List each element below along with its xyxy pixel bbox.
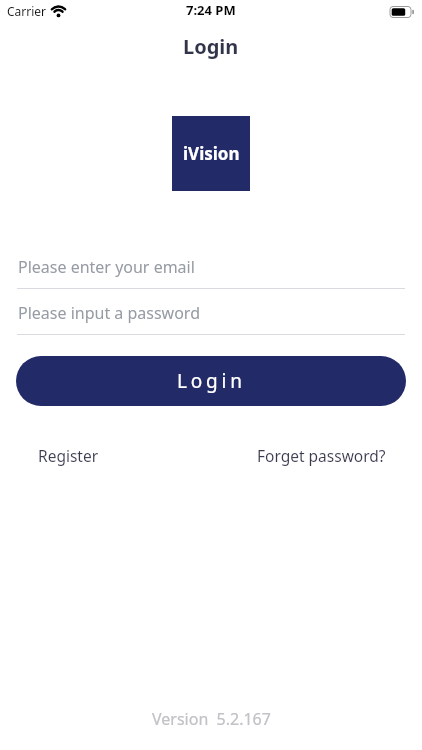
staticText: Please enter your email [18,256,195,278]
button[interactable]: Please enter your email [17,250,405,289]
staticText: Login [183,33,239,60]
button[interactable]: Login [16,356,406,406]
button[interactable]: Forget password? [249,437,394,474]
staticText: Please input a password [18,302,201,324]
staticText: Register [38,445,99,466]
staticText: iVision [183,142,240,165]
staticText: Forget password? [257,445,386,466]
button[interactable]: Register [30,437,107,474]
staticText: Version 5.2.167 [152,708,271,730]
staticText: Login [177,368,246,394]
button[interactable]: Please input a password [17,296,405,335]
staticText: Carrier [7,3,47,19]
staticText: 7:24 PM [186,1,236,19]
